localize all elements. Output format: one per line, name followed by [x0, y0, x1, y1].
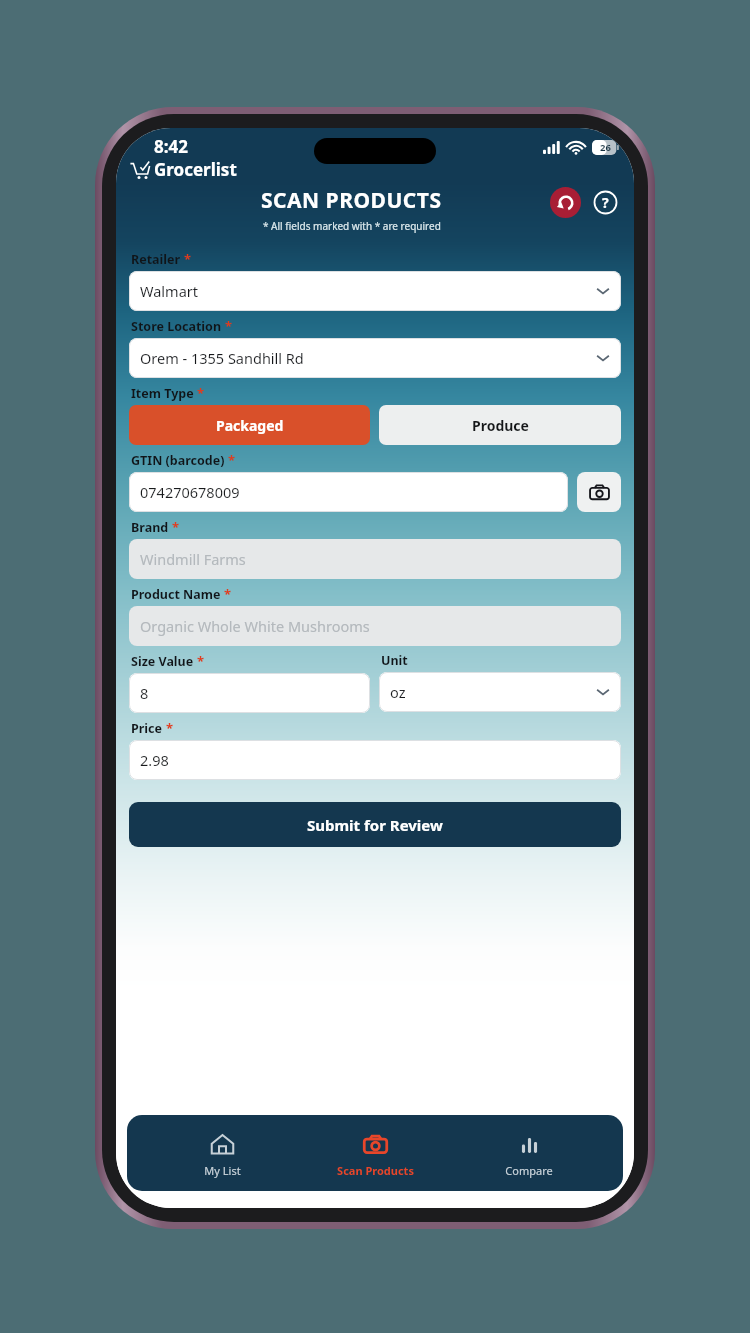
staticText: Walmart [140, 281, 198, 301]
button[interactable]: 2.98 [129, 740, 621, 780]
button[interactable]: Scan Products [316, 1115, 434, 1191]
button[interactable]: Scan barcode with camera [577, 472, 621, 512]
staticText: * All fields marked with * are required [263, 219, 441, 233]
staticText: * [228, 451, 236, 469]
button[interactable]: Compare [470, 1115, 588, 1191]
staticText: ? [602, 193, 609, 212]
staticText: Brand [131, 519, 169, 536]
button[interactable]: 8 [129, 673, 370, 713]
button[interactable]: Help [592, 189, 619, 216]
staticText: Produce [472, 416, 529, 435]
button[interactable]: Packaged [129, 405, 370, 445]
button[interactable]: My List [163, 1115, 281, 1191]
staticText: Packaged [216, 416, 284, 435]
staticText: 8:42 [154, 135, 188, 158]
staticText: Grocerlist [154, 158, 237, 181]
staticText: 2.98 [140, 750, 169, 770]
staticText: Orem - 1355 Sandhill Rd [140, 348, 304, 368]
staticText: * [225, 317, 233, 335]
staticText: Store Location [131, 318, 222, 335]
staticText: * [166, 719, 174, 737]
staticText: 074270678009 [140, 482, 240, 502]
staticText: My List [204, 1163, 241, 1178]
button[interactable]: Reset form [550, 187, 581, 218]
button[interactable]: oz [379, 672, 621, 712]
button[interactable]: Windmill Farms [129, 539, 621, 579]
staticText: 8 [140, 683, 149, 703]
staticText: Windmill Farms [140, 549, 246, 569]
staticText: * [184, 250, 192, 268]
button[interactable]: Submit for Review [129, 802, 621, 847]
staticText: * [197, 652, 205, 670]
staticText: Size Value [131, 653, 194, 670]
staticText: 26 [600, 141, 611, 154]
staticText: * [172, 518, 180, 536]
staticText: Item Type [131, 385, 194, 402]
staticText: Organic Whole White Mushrooms [140, 616, 370, 636]
button[interactable]: Walmart [129, 271, 621, 311]
staticText: GTIN (barcode) [131, 452, 225, 469]
button[interactable]: Organic Whole White Mushrooms [129, 606, 621, 646]
staticText: Product Name [131, 586, 221, 603]
button[interactable]: Orem - 1355 Sandhill Rd [129, 338, 621, 378]
staticText: Retailer [131, 251, 181, 268]
staticText: Price [131, 720, 163, 737]
staticText: Submit for Review [307, 815, 443, 835]
staticText: oz [390, 682, 406, 702]
staticText: * [224, 585, 232, 603]
staticText: SCAN PRODUCTS [261, 186, 442, 215]
staticText: Scan Products [337, 1163, 414, 1178]
staticText: * [197, 384, 205, 402]
staticText: Compare [505, 1163, 553, 1178]
button[interactable]: 074270678009 [129, 472, 568, 512]
staticText: Unit [381, 652, 408, 669]
button[interactable]: Produce [379, 405, 621, 445]
